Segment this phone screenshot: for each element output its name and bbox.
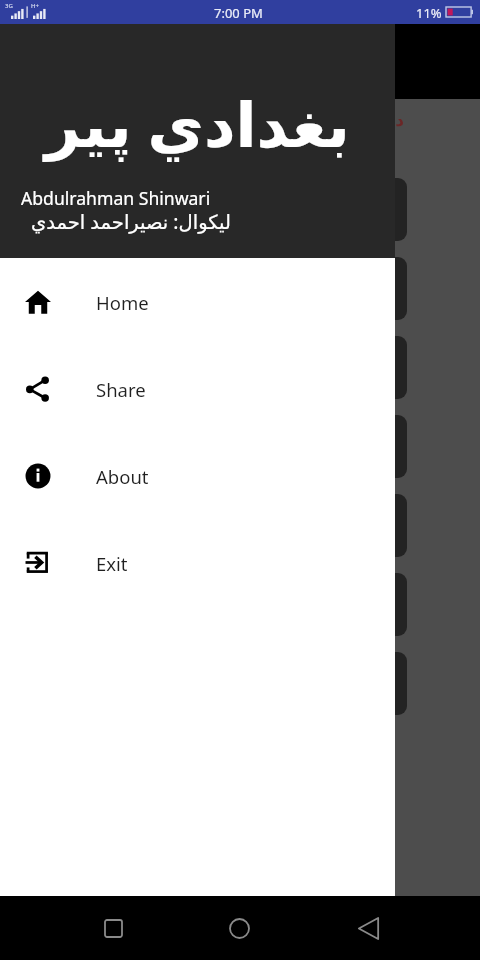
staticText: بغدادي پير	[0, 81, 395, 165]
staticText: د بغدادي پير ژوندليک	[0, 108, 404, 131]
staticText: Home	[96, 290, 149, 315]
button[interactable]: Back	[344, 904, 393, 953]
staticText: 7:00 PM	[214, 4, 263, 22]
staticText: Share	[96, 377, 146, 402]
button[interactable]: Recents	[89, 904, 138, 953]
button[interactable]: Close navigation drawer	[0, 0, 480, 960]
staticText: 3G	[5, 2, 13, 10]
button[interactable]: Exit	[0, 531, 395, 595]
button[interactable]: Share	[0, 357, 395, 421]
button[interactable]: About	[0, 444, 395, 508]
staticText: Exit	[96, 551, 128, 576]
staticText: 11%	[416, 4, 442, 22]
staticText: About	[96, 464, 149, 489]
button[interactable]: Home	[0, 270, 395, 334]
button[interactable]: Home	[215, 904, 264, 953]
staticText: ليكوال: نصيراحمد احمدي	[31, 208, 231, 235]
staticText: H+	[31, 2, 39, 10]
staticText: Abdulrahman Shinwari	[21, 186, 211, 210]
